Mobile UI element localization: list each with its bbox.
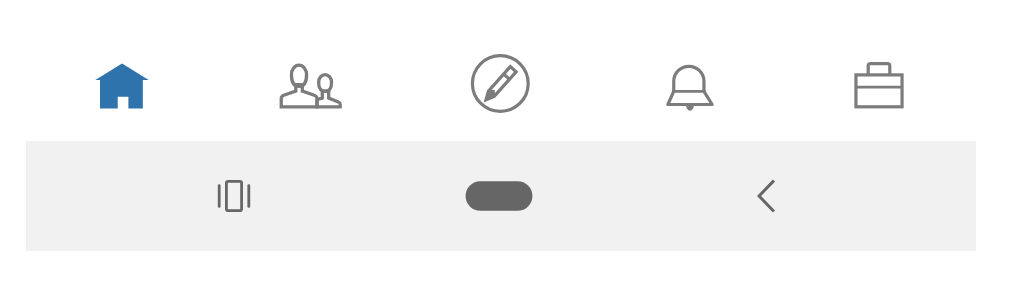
button[interactable]: Back [706, 141, 826, 251]
button[interactable]: Recent apps [174, 141, 294, 251]
button[interactable]: Notifications [595, 0, 784, 141]
button[interactable]: Home [439, 141, 559, 251]
button[interactable]: Compose [406, 0, 595, 141]
button[interactable]: Work [784, 0, 973, 141]
button[interactable]: Home [27, 0, 217, 141]
button[interactable]: Contacts [217, 0, 406, 141]
